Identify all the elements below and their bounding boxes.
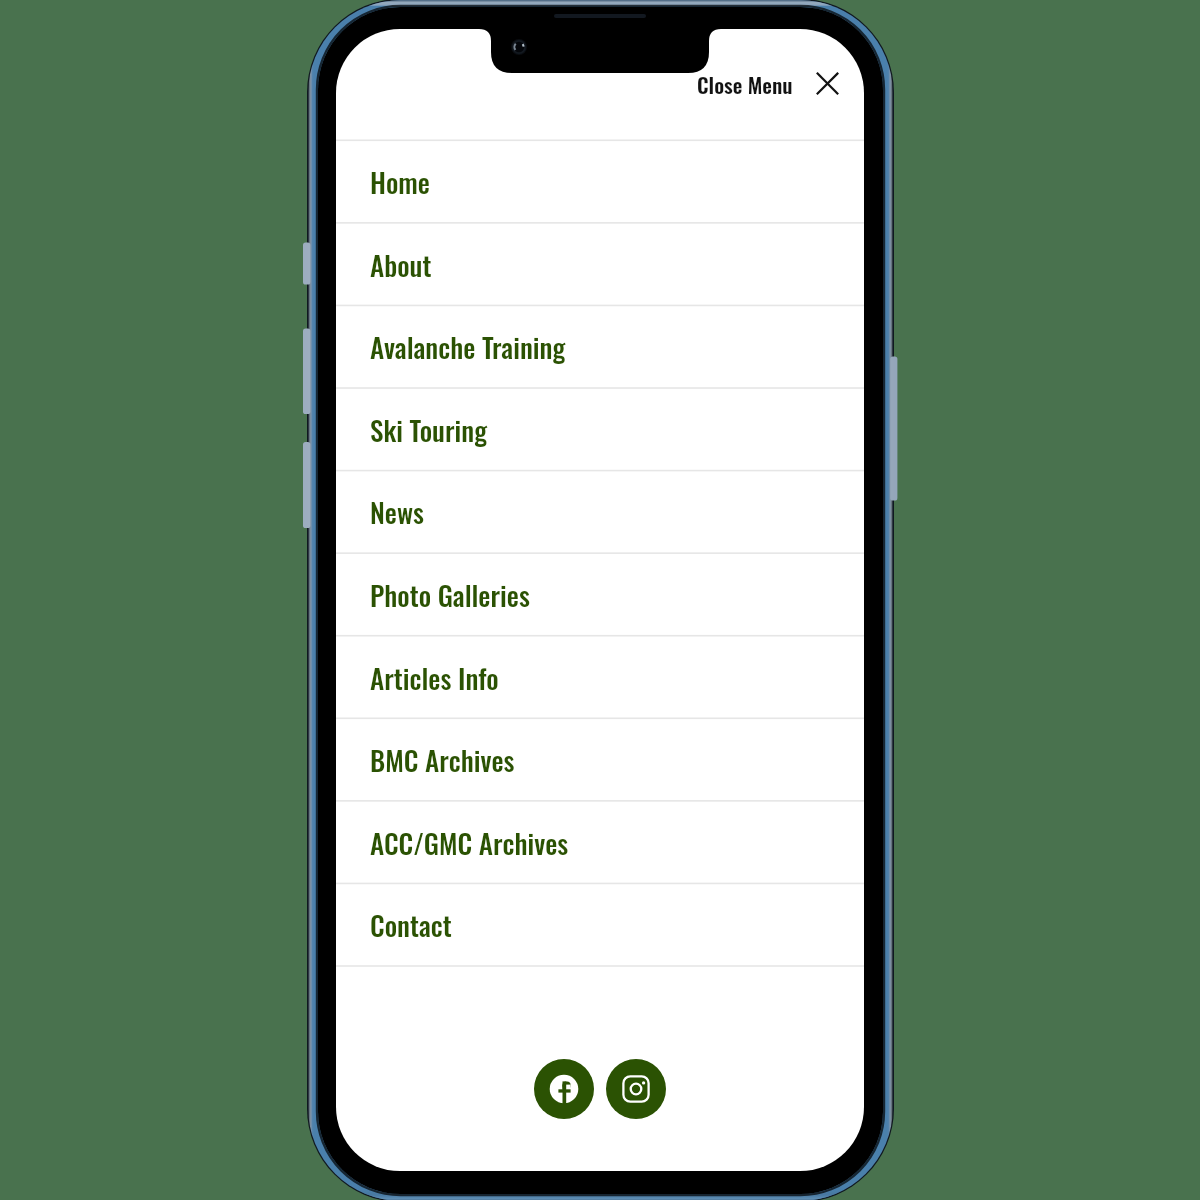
button[interactable]: Articles Info bbox=[336, 637, 864, 718]
staticText: Home bbox=[370, 162, 430, 202]
staticText: Photo Galleries bbox=[370, 575, 530, 615]
button[interactable]: About bbox=[336, 224, 864, 305]
button[interactable]: Close Menu bbox=[695, 66, 840, 103]
staticText: BMC Archives bbox=[370, 740, 515, 780]
button[interactable]: Home bbox=[336, 141, 864, 222]
other: Close menu bbox=[817, 73, 838, 94]
staticText: Avalanche Training bbox=[370, 327, 566, 367]
button[interactable]: Instagram bbox=[606, 1059, 666, 1119]
staticText: ACC/GMC Archives bbox=[370, 823, 569, 863]
staticText: Articles Info bbox=[370, 658, 499, 698]
staticText: Ski Touring bbox=[370, 410, 487, 450]
staticText: Contact bbox=[370, 905, 452, 945]
button[interactable]: Avalanche Training bbox=[336, 306, 864, 387]
staticText: News bbox=[370, 492, 424, 532]
button[interactable]: Facebook bbox=[534, 1059, 594, 1119]
button[interactable]: Photo Galleries bbox=[336, 554, 864, 635]
button[interactable]: ACC/GMC Archives bbox=[336, 802, 864, 883]
button[interactable]: News bbox=[336, 471, 864, 552]
button[interactable]: Contact bbox=[336, 884, 864, 965]
button[interactable]: Ski Touring bbox=[336, 389, 864, 470]
staticText: Close Menu bbox=[697, 69, 793, 100]
staticText: About bbox=[370, 245, 432, 285]
button[interactable]: BMC Archives bbox=[336, 719, 864, 800]
